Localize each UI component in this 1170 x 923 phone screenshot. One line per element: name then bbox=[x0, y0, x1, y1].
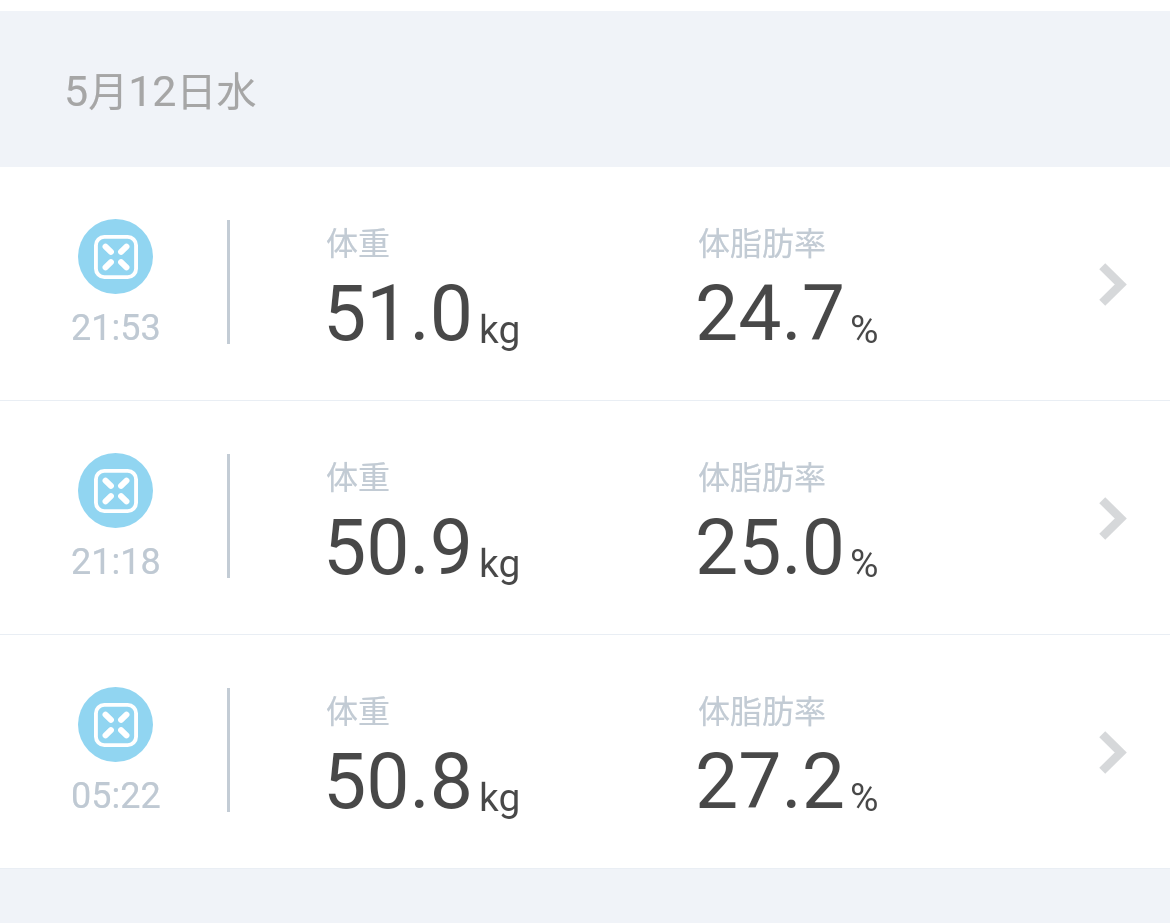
staticText: kg bbox=[479, 307, 521, 353]
staticText: % bbox=[850, 307, 879, 353]
other: 詳細 bbox=[1098, 496, 1125, 541]
staticText: 体重 bbox=[326, 686, 391, 732]
staticText: 24.7 bbox=[695, 269, 846, 359]
staticText: 体脂肪率 bbox=[698, 218, 827, 264]
staticText: 27.2 bbox=[695, 737, 846, 827]
staticText: 51.0 bbox=[323, 269, 474, 359]
staticText: 体重 bbox=[326, 452, 391, 498]
staticText: 21:53 bbox=[71, 307, 161, 349]
staticText: 21:18 bbox=[71, 541, 161, 583]
staticText: 体脂肪率 bbox=[698, 452, 827, 498]
staticText: kg bbox=[479, 541, 521, 587]
staticText: 25.0 bbox=[695, 503, 846, 593]
button[interactable]: 05:22 bbox=[0, 635, 1170, 868]
button[interactable]: 21:18 bbox=[0, 401, 1170, 634]
staticText: 50.8 bbox=[323, 737, 474, 827]
button[interactable]: 21:53 bbox=[0, 167, 1170, 400]
staticText: 体脂肪率 bbox=[698, 686, 827, 732]
staticText: 5月12日水 bbox=[64, 60, 257, 118]
staticText: % bbox=[850, 775, 879, 821]
staticText: % bbox=[850, 541, 879, 587]
staticText: 体重 bbox=[326, 218, 391, 264]
other: 詳細 bbox=[1098, 730, 1125, 775]
staticText: 50.9 bbox=[323, 503, 474, 593]
other: 詳細 bbox=[1098, 262, 1125, 307]
staticText: kg bbox=[479, 775, 521, 821]
staticText: 05:22 bbox=[71, 775, 161, 817]
